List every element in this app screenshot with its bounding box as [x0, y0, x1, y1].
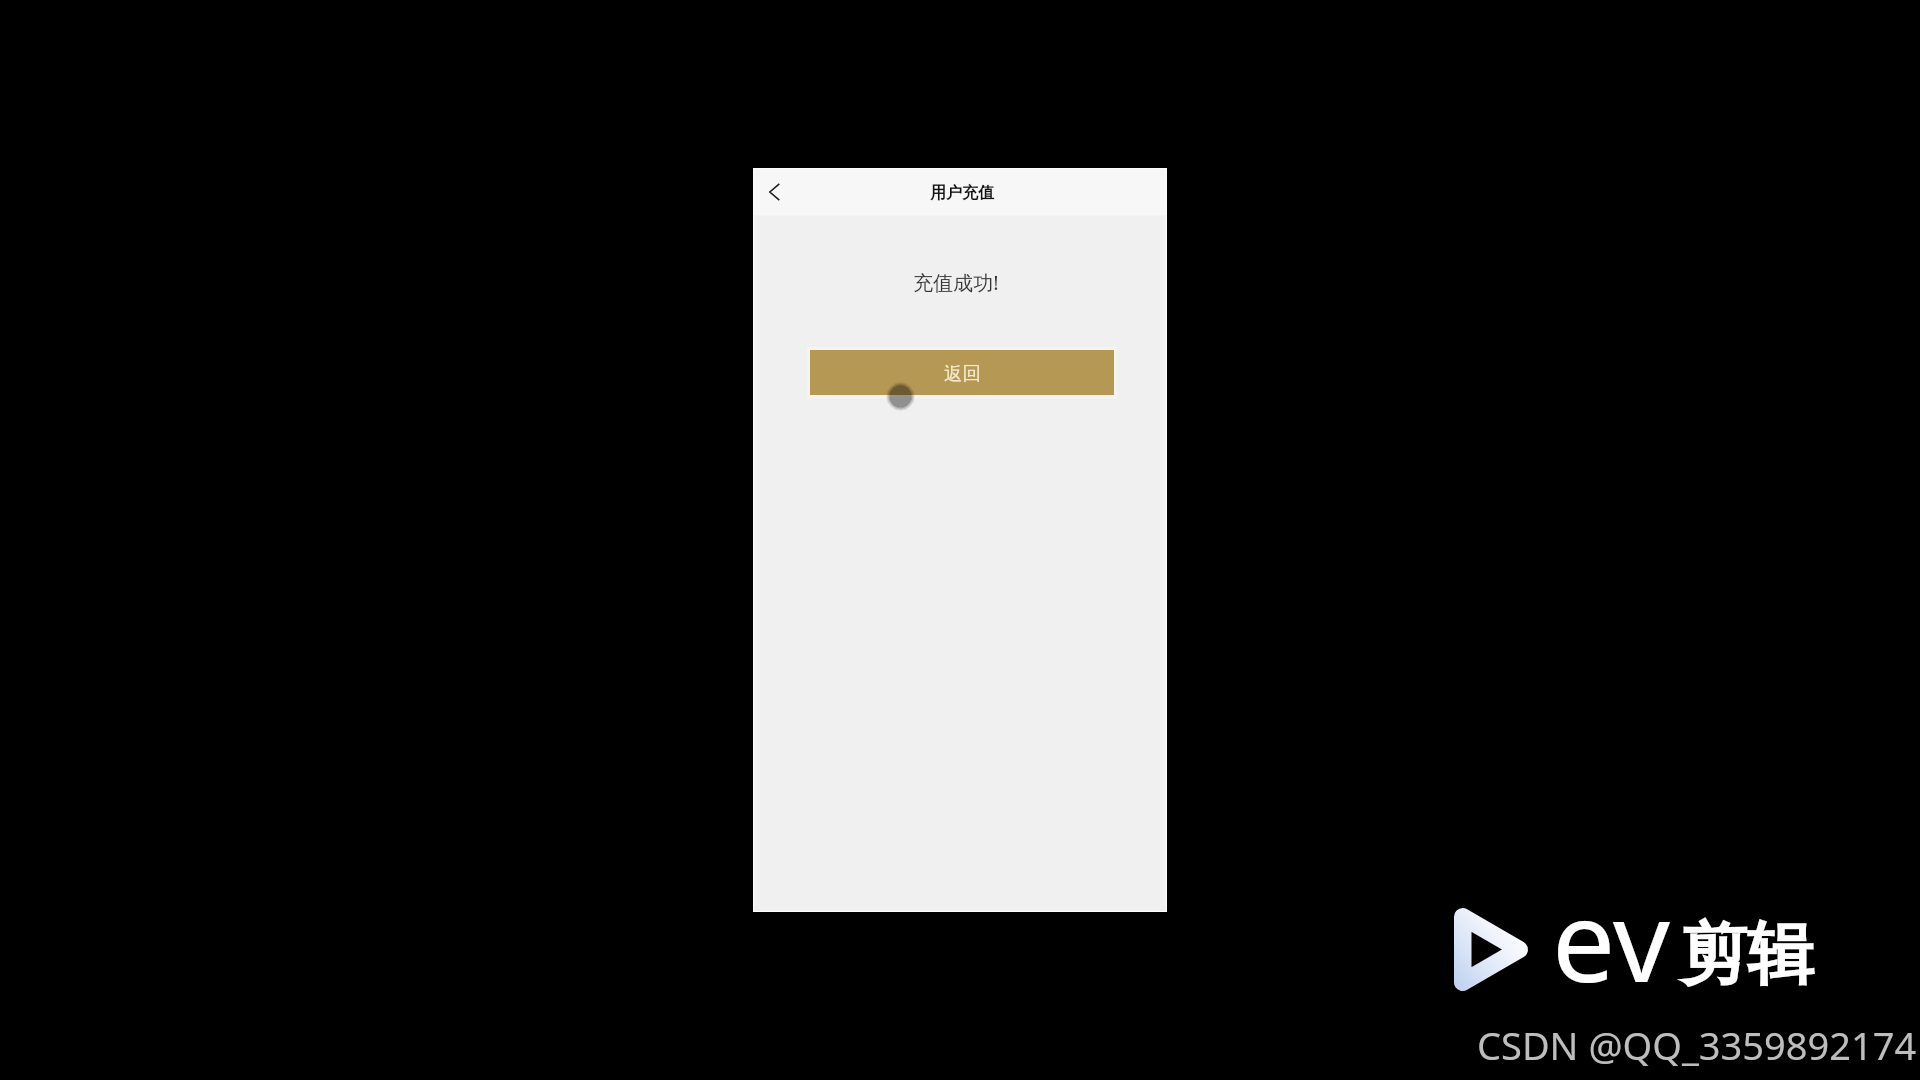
- button[interactable]: Back: [753, 169, 799, 215]
- staticText: 用户充值: [930, 183, 994, 203]
- staticText: ev: [1552, 862, 1670, 1015]
- staticText: 充值成功!: [913, 269, 999, 296]
- staticText: 剪辑: [1680, 912, 1814, 996]
- staticText: CSDN @QQ_3359892174: [1477, 1019, 1917, 1071]
- staticText: 返回: [944, 362, 981, 385]
- button[interactable]: 返回: [810, 350, 1114, 395]
